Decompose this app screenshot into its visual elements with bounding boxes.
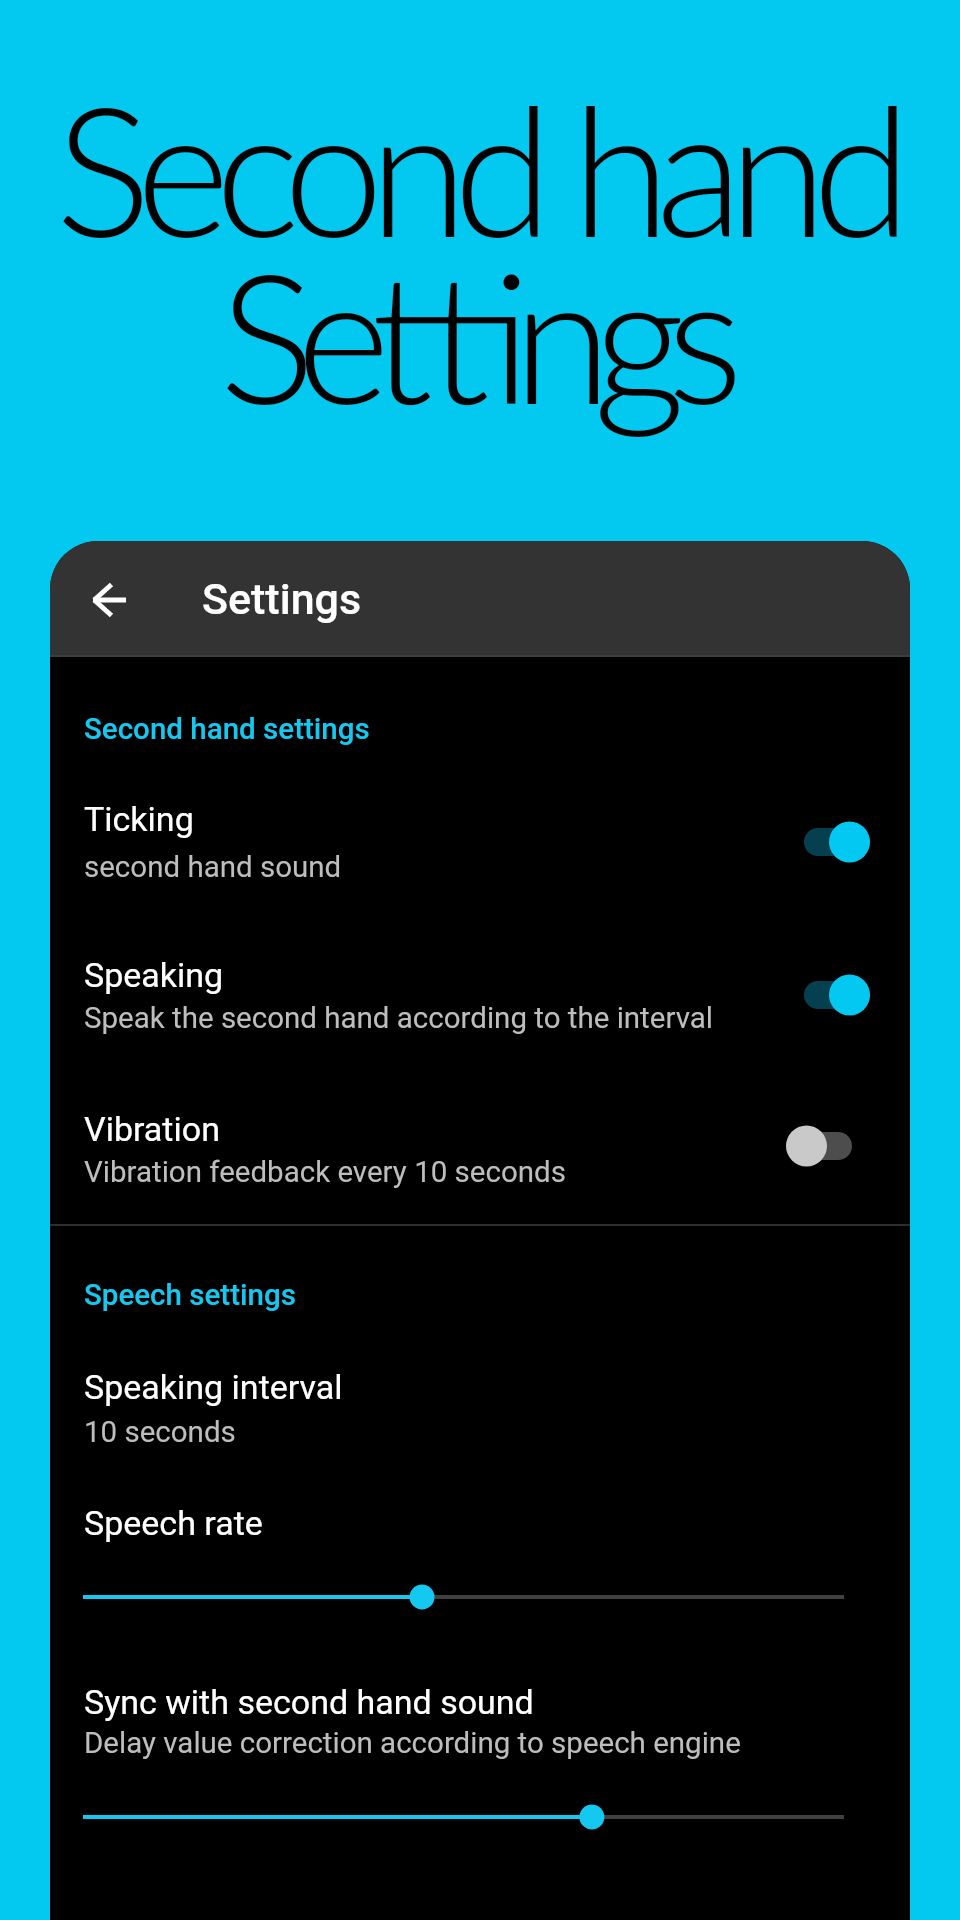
staticText: Sync with second hand sound [84,1682,534,1722]
staticText: Speech rate [84,1503,263,1543]
button[interactable]: Speaking interval [50,1355,910,1455]
staticText: Second hand [55,59,897,275]
staticText: Ticking [84,799,194,839]
staticText: Vibration feedback every 10 seconds [84,1155,566,1190]
button[interactable]: Speaking [50,931,910,1047]
button[interactable] [83,1580,844,1614]
button[interactable]: Toggle Speaking [804,974,870,1016]
button[interactable]: Vibration [50,1085,910,1201]
button[interactable]: Toggle Ticking [804,821,870,863]
button[interactable]: Toggle Vibration [786,1125,852,1167]
staticText: Vibration [84,1109,220,1149]
staticText: Second hand settings [84,712,370,747]
staticText: Speaking interval [84,1367,343,1407]
staticText: Speaking [84,955,224,995]
staticText: Speech settings [84,1278,296,1313]
staticText: Settings [219,226,725,442]
button[interactable]: Speech rate [50,1495,910,1549]
staticText: second hand sound [84,850,342,885]
staticText: Delay value correction according to spee… [84,1726,741,1761]
button[interactable]: Back [62,553,156,647]
button[interactable] [83,1800,844,1834]
staticText: Settings [202,574,362,624]
button[interactable]: Sync with second hand sound [50,1670,910,1766]
button[interactable]: Ticking [50,775,910,896]
staticText: Speak the second hand according to the i… [84,1001,713,1036]
staticText: 10 seconds [84,1415,236,1450]
